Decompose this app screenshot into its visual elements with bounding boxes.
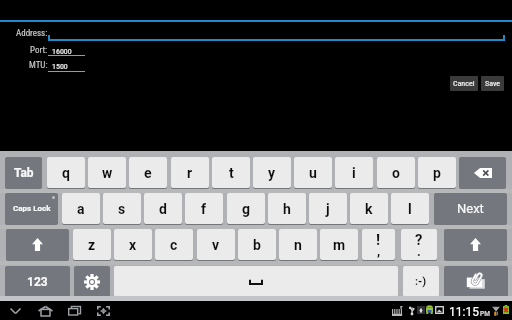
staticText: Cancel — [453, 79, 475, 88]
staticText: , — [377, 244, 381, 259]
staticText: u — [309, 165, 317, 181]
button[interactable]: g — [227, 193, 265, 224]
button[interactable]: p — [418, 157, 456, 188]
button[interactable]: Caps Lock — [5, 193, 58, 224]
button[interactable]: w — [88, 157, 126, 188]
button[interactable]: u — [294, 157, 332, 188]
button[interactable]: v — [197, 229, 235, 260]
staticText: k — [365, 201, 373, 217]
staticText: j — [326, 201, 330, 217]
button[interactable]: Attach — [444, 266, 508, 297]
staticText: Address: — [16, 28, 48, 39]
button[interactable]: Backspace — [459, 157, 506, 188]
staticText: MTU: — [29, 60, 48, 71]
staticText: Next — [457, 201, 484, 216]
button[interactable]: Status — [386, 301, 512, 320]
staticText: t — [229, 165, 234, 181]
staticText: v — [212, 237, 220, 253]
button[interactable]: ? — [401, 229, 437, 260]
button[interactable]: a — [62, 193, 100, 224]
staticText: Save — [485, 79, 501, 88]
button[interactable]: b — [238, 229, 276, 260]
staticText: e — [144, 165, 152, 181]
staticText: n — [294, 237, 302, 253]
button[interactable]: Space — [114, 266, 398, 297]
button[interactable]: Home — [31, 301, 59, 320]
staticText: 123 — [27, 275, 48, 289]
staticText: p — [433, 165, 441, 181]
staticText: a — [77, 201, 85, 217]
staticText: 1500 — [52, 62, 68, 71]
button[interactable]: Recents — [60, 301, 88, 320]
button[interactable]: :-) — [403, 266, 439, 297]
button[interactable]: z — [73, 229, 111, 260]
staticText: s — [118, 201, 126, 217]
button[interactable]: k — [350, 193, 388, 224]
staticText: 11:15 — [449, 305, 479, 319]
staticText: ! — [376, 231, 381, 249]
button[interactable]: y — [253, 157, 291, 188]
staticText: l — [408, 201, 412, 217]
staticText: w — [102, 165, 113, 181]
staticText: g — [242, 201, 250, 217]
staticText: PM — [480, 310, 490, 318]
button[interactable]: Save — [481, 76, 504, 91]
button[interactable]: h — [268, 193, 306, 224]
staticText: y — [268, 165, 276, 181]
button[interactable]: m — [320, 229, 358, 260]
button[interactable]: Settings — [74, 266, 110, 297]
staticText: :-) — [415, 275, 427, 288]
button[interactable]: r — [171, 157, 209, 188]
button[interactable]: i — [335, 157, 373, 188]
staticText: f — [201, 201, 207, 217]
button[interactable]: n — [279, 229, 317, 260]
staticText: 16000 — [52, 47, 72, 56]
staticText: x — [129, 237, 137, 253]
button[interactable]: Next — [434, 193, 507, 224]
button[interactable]: MTU field — [48, 60, 85, 72]
button[interactable]: c — [155, 229, 193, 260]
staticText: Port: — [30, 45, 48, 56]
button[interactable]: Shift — [6, 229, 69, 260]
button[interactable]: x — [114, 229, 152, 260]
button[interactable]: Port field — [48, 44, 85, 56]
button[interactable]: f — [185, 193, 223, 224]
button[interactable]: ! — [362, 229, 395, 260]
button[interactable]: Address field — [48, 28, 505, 41]
staticText: ? — [415, 231, 423, 249]
staticText: z — [88, 237, 96, 253]
button[interactable]: Fullscreen — [89, 301, 117, 320]
staticText: h — [283, 201, 291, 217]
staticText: r — [187, 165, 193, 181]
button[interactable]: Cancel — [450, 76, 478, 91]
button[interactable]: d — [144, 193, 182, 224]
button[interactable]: s — [103, 193, 141, 224]
staticText: o — [392, 165, 400, 181]
button[interactable]: j — [309, 193, 347, 224]
button[interactable]: 123 — [5, 266, 70, 297]
staticText: m — [333, 237, 346, 253]
button[interactable]: o — [377, 157, 415, 188]
button[interactable]: Tab — [5, 157, 42, 188]
staticText: q — [62, 165, 70, 181]
staticText: Tab — [14, 166, 34, 180]
button[interactable]: l — [391, 193, 429, 224]
staticText: c — [170, 237, 178, 253]
button[interactable]: e — [129, 157, 167, 188]
button[interactable]: t — [212, 157, 250, 188]
button[interactable]: q — [47, 157, 85, 188]
staticText: . — [417, 244, 421, 259]
staticText: i — [352, 165, 356, 181]
button[interactable]: Hide keyboard — [1, 301, 29, 320]
staticText: d — [159, 201, 167, 217]
button[interactable]: Shift — [444, 229, 507, 260]
staticText: Caps Lock — [13, 204, 51, 213]
staticText: b — [253, 237, 261, 253]
